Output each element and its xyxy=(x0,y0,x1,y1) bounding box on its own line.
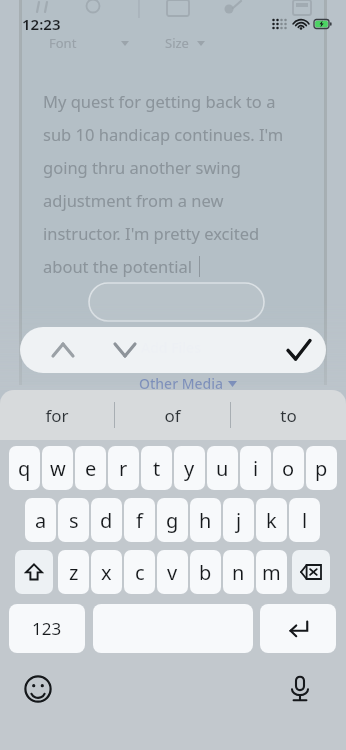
staticText: m xyxy=(262,559,281,586)
staticText: f xyxy=(136,507,143,534)
other: Shift xyxy=(25,563,43,581)
staticText: n xyxy=(232,559,245,586)
button[interactable]: t xyxy=(141,446,172,490)
button[interactable]: z xyxy=(58,550,89,594)
button[interactable]: d xyxy=(91,498,122,542)
staticText: l xyxy=(302,507,308,534)
button[interactable]: Done xyxy=(276,327,322,373)
button[interactable]: Next field xyxy=(102,327,148,373)
staticText: c xyxy=(135,559,145,586)
staticText: Font xyxy=(49,34,77,52)
button[interactable]: b xyxy=(190,550,221,594)
button[interactable]: Shift xyxy=(15,550,53,594)
button[interactable]: l xyxy=(289,498,320,542)
staticText: s xyxy=(69,507,79,534)
staticText: for xyxy=(45,404,69,427)
button[interactable]: q xyxy=(9,446,40,490)
button[interactable]: Voice input xyxy=(278,667,322,711)
staticText: Size xyxy=(165,34,189,52)
staticText: to xyxy=(280,404,297,427)
staticText: of xyxy=(164,404,181,427)
staticText: u xyxy=(216,455,229,482)
staticText: t xyxy=(153,455,161,482)
staticText: sub 10 handicap continues. I'm xyxy=(43,123,284,145)
staticText: i xyxy=(253,455,259,482)
staticText: g xyxy=(166,507,179,534)
button[interactable]: g xyxy=(157,498,188,542)
staticText: going thru another swing xyxy=(43,156,241,178)
button[interactable]: e xyxy=(75,446,106,490)
staticText: y xyxy=(184,455,195,482)
button[interactable]: Previous field xyxy=(40,327,86,373)
button[interactable]: i xyxy=(240,446,271,490)
button[interactable]: u xyxy=(207,446,238,490)
staticText: r xyxy=(119,455,128,482)
staticText: e xyxy=(85,455,97,482)
staticText: o xyxy=(282,455,295,482)
button[interactable]: f xyxy=(124,498,155,542)
button[interactable]: k xyxy=(256,498,287,542)
staticText: p xyxy=(315,455,328,482)
button[interactable]: h xyxy=(190,498,221,542)
button[interactable]: j xyxy=(223,498,254,542)
button[interactable]: Space xyxy=(93,604,253,653)
button[interactable]: r xyxy=(108,446,139,490)
staticText: h xyxy=(199,507,212,534)
button[interactable]: 123 xyxy=(9,604,85,653)
staticText: 123 xyxy=(32,617,62,640)
button[interactable]: to xyxy=(231,390,346,440)
staticText: j xyxy=(236,507,242,534)
button[interactable]: s xyxy=(58,498,89,542)
staticText: instructor. I'm pretty excited xyxy=(43,222,260,244)
button[interactable]: x xyxy=(91,550,122,594)
staticText: d xyxy=(100,507,113,534)
staticText: 12:23 xyxy=(22,14,61,34)
other: Backspace xyxy=(300,564,322,580)
button[interactable]: for xyxy=(0,390,114,440)
button[interactable]: y xyxy=(174,446,205,490)
button[interactable]: o xyxy=(273,446,304,490)
button[interactable]: w xyxy=(42,446,73,490)
staticText: My quest for getting back to a xyxy=(43,90,276,112)
button[interactable]: c xyxy=(124,550,155,594)
staticText: adjustment from a new xyxy=(43,189,224,211)
staticText: k xyxy=(266,507,277,534)
staticText: w xyxy=(50,455,66,482)
button[interactable]: n xyxy=(223,550,254,594)
staticText: z xyxy=(69,559,79,586)
staticText: Other Media xyxy=(139,374,224,393)
button[interactable]: p xyxy=(306,446,337,490)
button[interactable]: Emoji xyxy=(16,667,60,711)
staticText: v xyxy=(167,559,178,586)
button[interactable]: a xyxy=(25,498,56,542)
button[interactable]: v xyxy=(157,550,188,594)
button[interactable]: of xyxy=(115,390,230,440)
staticText: x xyxy=(101,559,112,586)
button[interactable]: m xyxy=(256,550,287,594)
staticText: q xyxy=(18,455,31,482)
button[interactable]: Return xyxy=(260,604,336,653)
staticText: b xyxy=(199,559,212,586)
staticText: about the potential xyxy=(43,255,192,277)
button[interactable]: Backspace xyxy=(292,550,330,594)
staticText: a xyxy=(35,507,47,534)
